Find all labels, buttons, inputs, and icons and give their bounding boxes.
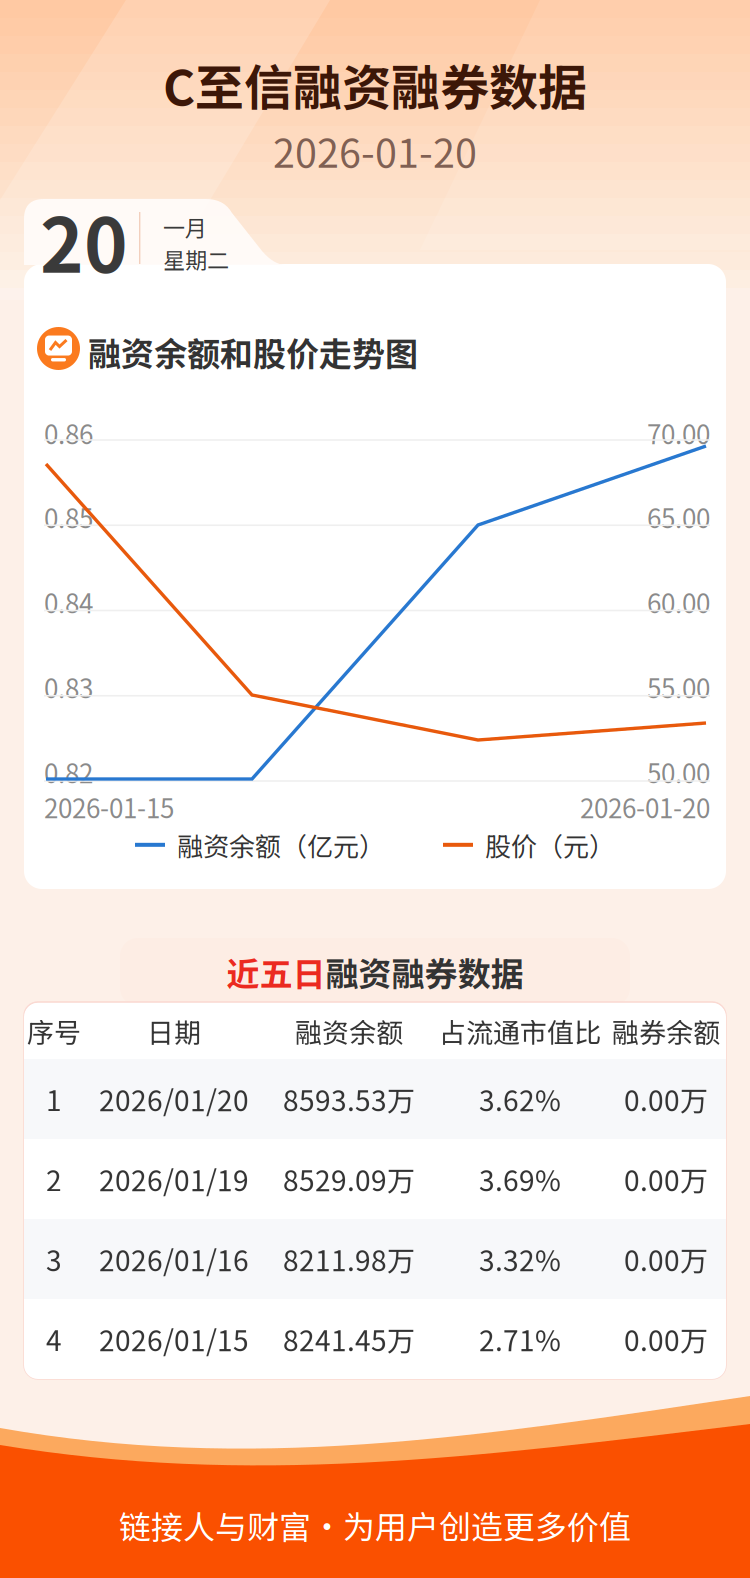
staticText: 8211.98万 — [283, 1239, 415, 1279]
staticText: 1 — [46, 1079, 62, 1119]
staticText: 融资余额 — [295, 1011, 403, 1051]
staticText: 70.00 — [647, 414, 710, 452]
staticText: 3.32% — [479, 1239, 561, 1279]
staticText: 8241.45万 — [283, 1319, 415, 1359]
staticText: 55.00 — [647, 668, 710, 706]
staticText: 0.84 — [44, 583, 93, 621]
staticText: 0.85 — [44, 498, 93, 536]
staticText: 0.83 — [44, 668, 93, 706]
staticText: 8593.53万 — [283, 1079, 415, 1119]
staticText: 占流通市值比 — [439, 1011, 601, 1051]
staticText: 8529.09万 — [283, 1159, 415, 1199]
staticText: 50.00 — [647, 753, 710, 791]
staticText: 2026/01/20 — [99, 1079, 249, 1119]
staticText: 0.00万 — [624, 1319, 708, 1359]
staticText: 日期 — [147, 1011, 201, 1051]
staticText: 3.69% — [479, 1159, 561, 1199]
staticText: 序号 — [27, 1011, 81, 1051]
staticText: 65.00 — [647, 498, 710, 536]
staticText: 2026/01/15 — [99, 1319, 249, 1359]
staticText: 0.00万 — [624, 1159, 708, 1199]
staticText: 0.82 — [44, 753, 93, 791]
staticText: 2026-01-20 — [580, 788, 710, 826]
staticText: 融资余额（亿元） — [177, 826, 385, 864]
staticText: 2026-01-20 — [273, 122, 477, 179]
staticText: 60.00 — [647, 583, 710, 621]
staticText: 3.62% — [479, 1079, 561, 1119]
staticText: C至信融资融券数据 — [163, 49, 587, 120]
staticText: 0.00万 — [624, 1239, 708, 1279]
staticText: 星期二 — [163, 243, 229, 275]
staticText: 融资融券数据 — [325, 948, 523, 996]
staticText: 0.00万 — [624, 1079, 708, 1119]
staticText: 4 — [46, 1319, 62, 1359]
staticText: 20 — [40, 187, 128, 294]
staticText: 融资余额和股价走势图 — [88, 328, 418, 376]
staticText: 2 — [46, 1159, 62, 1199]
staticText: 近五日 — [226, 948, 325, 996]
staticText: 2026/01/16 — [99, 1239, 249, 1279]
staticText: 2026-01-15 — [44, 788, 174, 826]
staticText: 3 — [46, 1239, 62, 1279]
staticText: 一月 — [163, 211, 207, 243]
staticText: 股价（元） — [485, 826, 615, 864]
staticText: 融券余额 — [612, 1011, 720, 1051]
staticText: 链接人与财富·为用户创造更多价值 — [119, 1502, 631, 1548]
staticText: 2.71% — [479, 1319, 561, 1359]
staticText: 0.86 — [44, 414, 93, 452]
staticText: 2026/01/19 — [99, 1159, 249, 1199]
